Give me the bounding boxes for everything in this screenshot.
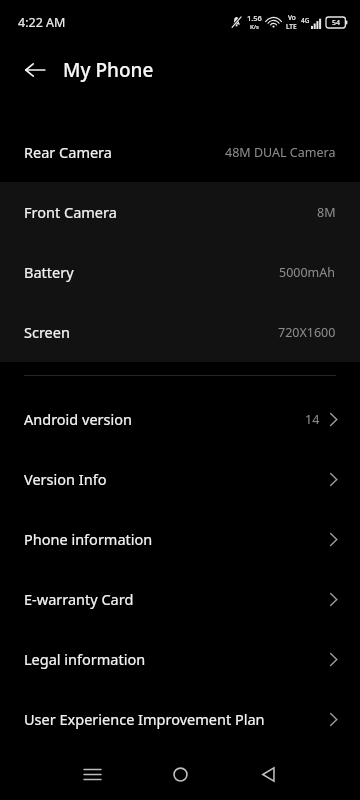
staticText: E-warranty Card — [24, 589, 134, 609]
staticText: Android version — [24, 409, 132, 429]
staticText: My Phone — [63, 57, 154, 83]
staticText: Vo — [288, 13, 296, 22]
staticText: 8M — [317, 204, 336, 221]
staticText: 54 — [332, 18, 341, 28]
staticText: 14 — [305, 411, 320, 428]
button[interactable]: Front Camera — [0, 182, 360, 242]
staticText: 720X1600 — [278, 324, 336, 341]
staticText: Phone information — [24, 529, 153, 549]
staticText: User Experience Improvement Plan — [24, 709, 265, 729]
button[interactable]: Back — [244, 750, 292, 798]
button[interactable]: Screen — [0, 302, 360, 362]
staticText: 4:22 AM — [18, 14, 66, 31]
staticText: 1.56 — [247, 13, 262, 23]
button[interactable]: Back — [15, 50, 55, 90]
button[interactable]: Legal information — [0, 629, 360, 689]
button[interactable]: Version Info — [0, 449, 360, 509]
staticText: Front Camera — [24, 202, 117, 222]
button[interactable]: Home — [156, 750, 204, 798]
staticText: 4G — [301, 16, 310, 25]
button[interactable]: Battery — [0, 242, 360, 302]
button[interactable]: Phone information — [0, 509, 360, 569]
button[interactable]: E-warranty Card — [0, 569, 360, 629]
button[interactable]: Rear Camera — [0, 122, 360, 182]
staticText: Battery — [24, 262, 74, 282]
staticText: LTE — [286, 22, 297, 31]
staticText: K/s — [250, 23, 260, 31]
staticText: 48M DUAL Camera — [225, 144, 336, 161]
staticText: Version Info — [24, 469, 107, 489]
button[interactable]: Android version — [0, 389, 360, 449]
staticText: Rear Camera — [24, 142, 112, 162]
staticText: 5000mAh — [279, 264, 336, 281]
button[interactable]: User Experience Improvement Plan — [0, 689, 360, 749]
button[interactable]: Recent apps — [68, 750, 116, 798]
staticText: Legal information — [24, 649, 146, 669]
staticText: Screen — [24, 322, 70, 342]
